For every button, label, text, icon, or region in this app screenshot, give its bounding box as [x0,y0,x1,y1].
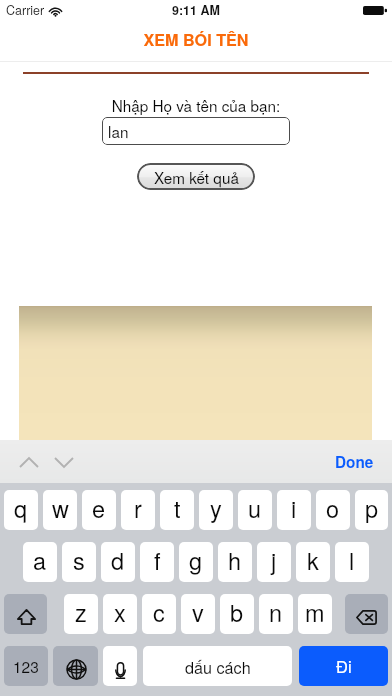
staticText: d [111,543,125,577]
button[interactable]: h [218,542,252,582]
staticText: Carrier [6,1,45,19]
staticText: y [210,491,222,525]
button[interactable]: a [23,542,57,582]
staticText: Xem kết quả [154,166,239,188]
button[interactable]: w [43,490,77,530]
staticText: l [349,543,355,577]
button[interactable]: e [82,490,116,530]
button[interactable]: k [296,542,330,582]
staticText: n [269,595,283,629]
staticText: lan [108,120,129,142]
staticText: o [326,491,340,525]
button[interactable]: 123 [4,646,48,686]
button[interactable]: j [257,542,291,582]
button[interactable]: v [181,594,215,634]
staticText: k [307,543,319,577]
button[interactable]: s [62,542,96,582]
button[interactable]: q [4,490,38,530]
staticText: q [14,491,28,525]
staticText: Done [335,451,374,473]
button[interactable]: dấu cách [143,646,292,686]
button[interactable]: c [142,594,176,634]
staticText: u [248,491,262,525]
button[interactable]: r [121,490,155,530]
button[interactable]: o [316,490,350,530]
button[interactable]: n [259,594,293,634]
staticText: h [228,543,242,577]
staticText: b [230,595,244,629]
staticText: Nhập Họ và tên của bạn: [0,94,392,116]
button[interactable]: Dictation [103,646,137,686]
staticText: i [291,491,297,525]
button[interactable]: f [140,542,174,582]
staticText: Đi [336,654,352,678]
button[interactable]: p [355,490,388,530]
button[interactable]: u [238,490,272,530]
button[interactable]: x [103,594,137,634]
staticText: g [189,543,203,577]
staticText: m [305,595,325,629]
button[interactable]: y [199,490,233,530]
staticText: f [154,543,161,577]
button[interactable]: g [179,542,213,582]
staticText: p [365,491,379,525]
staticText: z [75,595,87,629]
staticText: a [33,543,47,577]
staticText: 123 [13,655,39,677]
button[interactable]: t [160,490,194,530]
staticText: t [174,491,181,525]
button[interactable]: z [64,594,98,634]
staticText: r [134,491,142,525]
button[interactable]: d [101,542,135,582]
button[interactable]: lan [102,117,290,145]
button[interactable]: Next field [46,444,81,480]
button[interactable]: Backspace [345,594,388,634]
button[interactable]: Đi [299,646,388,686]
staticText: e [92,491,106,525]
button[interactable]: Done [323,444,392,480]
button[interactable]: Shift [4,594,47,634]
button[interactable]: Previous field [11,444,46,480]
staticText: v [192,595,204,629]
button[interactable]: l [335,542,369,582]
staticText: s [73,543,85,577]
button[interactable]: m [298,594,332,634]
staticText: c [153,595,165,629]
staticText: j [271,543,277,577]
button[interactable]: Xem kết quả [137,163,255,190]
staticText: 9:11 AM [172,1,220,19]
staticText: XEM BÓI TÊN [0,28,392,51]
button[interactable]: b [220,594,254,634]
staticText: dấu cách [185,655,251,678]
button[interactable]: i [277,490,311,530]
button[interactable]: Switch keyboard [53,646,98,686]
staticText: w [52,491,69,525]
staticText: x [114,595,126,629]
